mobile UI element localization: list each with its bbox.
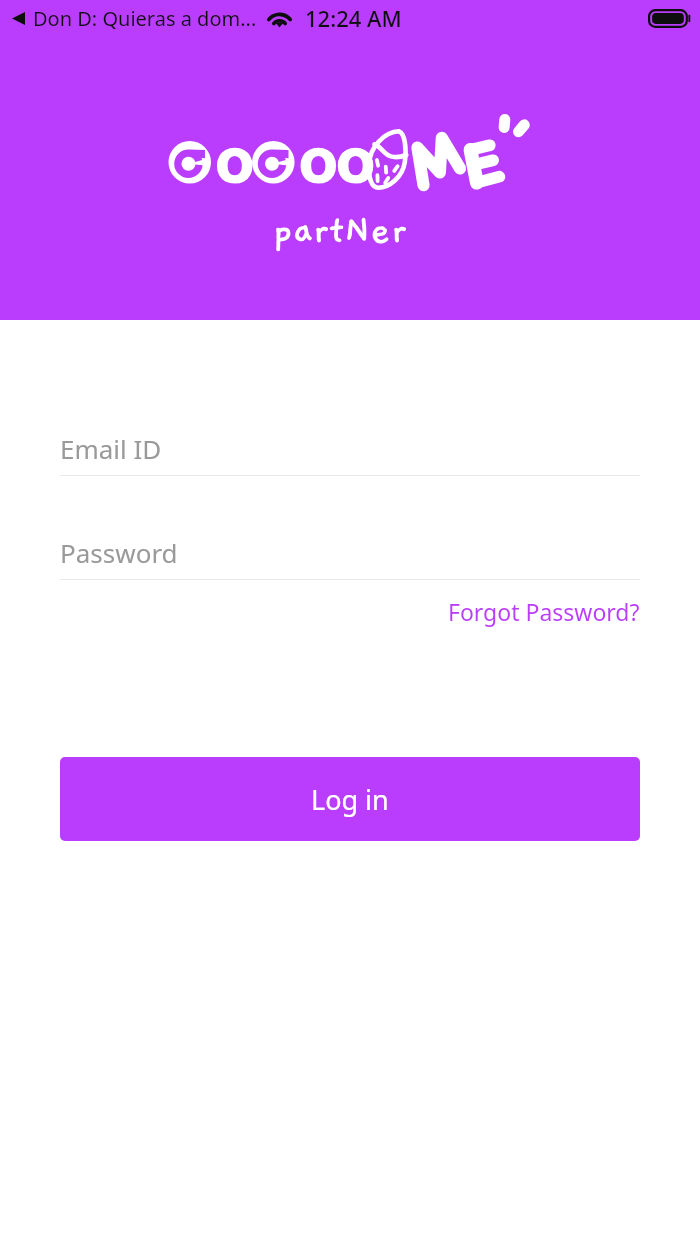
button[interactable]: Email ID bbox=[60, 431, 640, 476]
staticText: Email ID bbox=[60, 431, 162, 466]
button[interactable]: Log in bbox=[60, 757, 640, 841]
staticText: 12:24 AM bbox=[305, 3, 402, 33]
button[interactable]: Password bbox=[60, 535, 640, 580]
button[interactable]: Forgot Password? bbox=[448, 580, 640, 635]
staticText: Log in bbox=[311, 781, 389, 818]
staticText: Don D: Quieras a dom... bbox=[33, 5, 257, 32]
staticText: Password bbox=[60, 535, 178, 570]
staticText: Forgot Password? bbox=[448, 596, 640, 627]
